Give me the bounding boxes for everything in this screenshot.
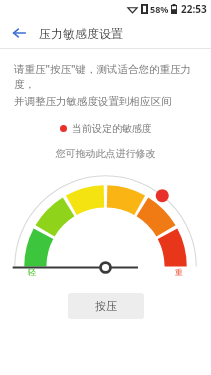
staticText: 重 (175, 267, 183, 277)
staticText: 请重压"按压"键，测试适合您的重压力度， (14, 62, 201, 91)
button[interactable]: Back (6, 20, 32, 46)
button[interactable]: 按压 (68, 293, 144, 319)
staticText: 并调整压力敏感度设置到相应区间 (14, 95, 172, 108)
staticText: 当前设定的敏感度 (72, 122, 152, 135)
staticText: 轻 (28, 267, 36, 277)
staticText: 58% (150, 3, 169, 15)
staticText: 按压 (95, 299, 117, 313)
staticText: 您可拖动此点进行修改 (0, 147, 211, 160)
staticText: 压力敏感度设置 (39, 26, 123, 41)
staticText: 22:53 (181, 2, 207, 16)
